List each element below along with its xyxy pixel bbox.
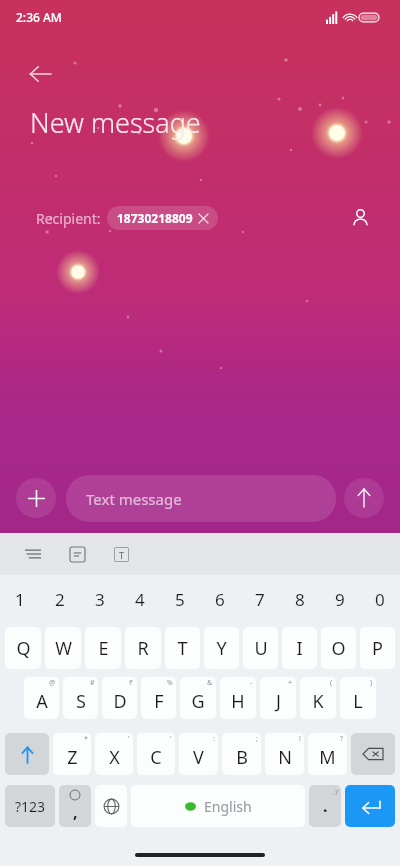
button[interactable]: R bbox=[125, 627, 161, 669]
staticText: ?123 bbox=[15, 797, 46, 816]
button[interactable]: U bbox=[243, 627, 278, 669]
button[interactable]: Enter bbox=[345, 785, 395, 827]
button[interactable]: 8 bbox=[280, 579, 320, 619]
staticText: T bbox=[177, 636, 188, 661]
button[interactable]: 2 bbox=[40, 579, 80, 619]
button[interactable]: 9 bbox=[320, 579, 360, 619]
button[interactable]: Send bbox=[344, 478, 384, 518]
button[interactable]: Emoji and comma bbox=[59, 785, 91, 827]
button[interactable]: : bbox=[179, 733, 218, 775]
button[interactable]: + bbox=[260, 677, 296, 719]
button[interactable]: ?123 bbox=[5, 785, 55, 827]
button[interactable]: & bbox=[180, 677, 216, 719]
staticText: % bbox=[167, 678, 173, 688]
button[interactable]: E bbox=[85, 627, 121, 669]
staticText: 9 bbox=[335, 588, 345, 611]
staticText: 3 bbox=[95, 588, 105, 611]
button[interactable]: ? bbox=[308, 733, 347, 775]
button[interactable]: Text message bbox=[66, 475, 336, 522]
button[interactable]: Clipboard bbox=[62, 539, 92, 569]
button[interactable]: Q bbox=[5, 627, 41, 669]
staticText: @ bbox=[49, 678, 56, 688]
staticText: Z bbox=[67, 745, 78, 770]
button[interactable]: ' bbox=[95, 733, 133, 775]
staticText: 4 bbox=[135, 588, 145, 611]
staticText: F bbox=[154, 689, 164, 714]
button[interactable]: T bbox=[165, 627, 200, 669]
staticText: L bbox=[353, 689, 363, 714]
staticText: ' bbox=[170, 734, 172, 744]
staticText: ( bbox=[330, 678, 333, 688]
button[interactable]: Contacts bbox=[340, 198, 380, 238]
staticText: Recipient: bbox=[36, 209, 101, 228]
staticText: Q bbox=[16, 636, 31, 661]
button[interactable]: ₹ bbox=[102, 677, 137, 719]
staticText: ) bbox=[370, 678, 373, 688]
button[interactable]: 5 bbox=[160, 579, 200, 619]
button[interactable]: 1 bbox=[0, 579, 40, 619]
staticText: K bbox=[312, 689, 324, 714]
staticText: : bbox=[213, 734, 215, 744]
staticText: T bbox=[119, 549, 125, 561]
staticText: ' bbox=[128, 734, 130, 744]
staticText: A bbox=[36, 689, 48, 714]
staticText: 6 bbox=[215, 588, 225, 611]
staticText: ; bbox=[256, 734, 258, 744]
button[interactable]: - bbox=[220, 677, 256, 719]
staticText: + bbox=[288, 678, 293, 688]
staticText: 5 bbox=[175, 588, 185, 611]
staticText: U bbox=[254, 636, 268, 661]
button[interactable]: W bbox=[45, 627, 81, 669]
button[interactable]: P bbox=[360, 627, 395, 669]
button[interactable]: 3 bbox=[80, 579, 120, 619]
button[interactable]: % bbox=[141, 677, 176, 719]
staticText: O bbox=[331, 636, 346, 661]
button[interactable]: Text settings bbox=[106, 539, 136, 569]
staticText: P bbox=[372, 636, 383, 661]
staticText: - bbox=[250, 678, 253, 688]
button[interactable]: * bbox=[53, 733, 91, 775]
button[interactable]: ! bbox=[265, 733, 304, 775]
button[interactable]: Add attachment bbox=[16, 478, 56, 518]
button[interactable]: Backspace bbox=[351, 733, 395, 775]
button[interactable]: 4 bbox=[120, 579, 160, 619]
button[interactable]: Shift bbox=[5, 733, 49, 775]
button[interactable]: 7 bbox=[240, 579, 280, 619]
staticText: English bbox=[204, 797, 252, 816]
button[interactable]: 0 bbox=[360, 579, 400, 619]
button[interactable]: ( bbox=[300, 677, 336, 719]
staticText: 2 bbox=[55, 588, 65, 611]
button[interactable]: ) bbox=[340, 677, 376, 719]
staticText: 2:36 AM bbox=[16, 9, 62, 25]
staticText: B bbox=[236, 745, 248, 770]
button[interactable]: Switch language bbox=[95, 785, 127, 827]
button[interactable]: ; bbox=[222, 733, 261, 775]
staticText: 18730218809 bbox=[117, 210, 193, 226]
staticText: M bbox=[319, 745, 336, 770]
button[interactable]: ' bbox=[137, 733, 175, 775]
staticText: G bbox=[191, 689, 205, 714]
button[interactable]: .? bbox=[309, 785, 341, 827]
staticText: D bbox=[113, 689, 127, 714]
button[interactable]: 18730218809 bbox=[107, 206, 218, 230]
button[interactable]: Back bbox=[16, 50, 64, 98]
button[interactable]: Y bbox=[204, 627, 239, 669]
staticText: ₹ bbox=[129, 678, 134, 688]
button[interactable]: I bbox=[282, 627, 317, 669]
button[interactable]: English bbox=[131, 785, 305, 827]
staticText: X bbox=[109, 745, 120, 770]
button[interactable]: @ bbox=[24, 677, 59, 719]
button[interactable]: Menu bbox=[18, 539, 48, 569]
staticText: N bbox=[278, 745, 292, 770]
staticText: C bbox=[150, 745, 162, 770]
staticText: V bbox=[193, 745, 204, 770]
staticText: Text message bbox=[86, 489, 182, 509]
staticText: & bbox=[207, 678, 213, 688]
button[interactable]: O bbox=[321, 627, 356, 669]
staticText: S bbox=[76, 689, 86, 714]
button[interactable]: # bbox=[63, 677, 98, 719]
staticText: ? bbox=[340, 734, 344, 744]
button[interactable]: 6 bbox=[200, 579, 240, 619]
staticText: 0 bbox=[375, 588, 385, 611]
staticText: E bbox=[98, 636, 109, 661]
